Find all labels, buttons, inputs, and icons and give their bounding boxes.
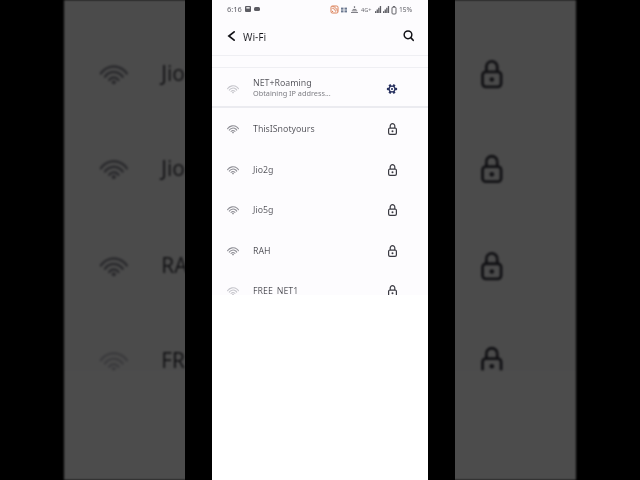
staticText: Jio2g [253,164,274,176]
staticText: Jio5g [253,204,274,216]
button[interactable]: Jio5g [212,189,428,230]
staticText: RAH [161,252,204,280]
staticText: Jio2g [161,60,211,88]
button[interactable]: FREE_NET1 [212,270,428,311]
staticText: Obtaining IP address... [253,88,331,98]
button[interactable]: Back [219,24,243,48]
button[interactable]: Jio2g [212,149,428,190]
button[interactable]: Secured network [381,118,403,140]
staticText: NET+Roaming [253,77,312,89]
button[interactable]: Secured network [381,280,403,302]
staticText: 4G+ [361,6,372,14]
button[interactable]: Secured network [381,240,403,262]
button[interactable]: Search [397,24,421,48]
staticText: ThisISnotyours [253,123,315,135]
button[interactable]: ThisISnotyours [212,108,428,149]
staticText: Wi-Fi [243,30,267,44]
staticText: FREE_NET1 [253,285,299,297]
button[interactable]: RAH [212,230,428,271]
button[interactable]: Secured network [381,159,403,181]
staticText: 15% [399,5,413,14]
button[interactable]: Network settings [381,78,403,100]
staticText: RAH [253,245,271,257]
staticText: FREE_NET1 [161,347,270,375]
button[interactable]: Secured network [381,199,403,221]
staticText: 6:16 [227,4,242,14]
button[interactable]: NET+Roaming [212,68,428,109]
staticText: Jio5g [161,155,211,183]
